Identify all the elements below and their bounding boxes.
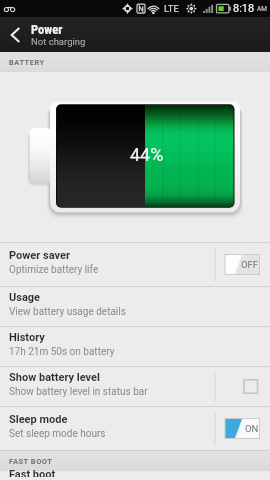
staticText: Power saver	[9, 249, 70, 262]
staticText: ON	[245, 423, 259, 434]
button[interactable]: Sleep mode on	[215, 407, 270, 450]
staticText: History	[9, 331, 45, 344]
button[interactable]: Fast boot	[0, 471, 270, 480]
staticText: 44%	[130, 144, 164, 165]
staticText: 17h 21m 50s on battery	[9, 346, 115, 358]
staticText: OFF	[241, 259, 259, 270]
staticText: Fast boot	[9, 468, 56, 477]
staticText: BATTERY	[9, 58, 45, 67]
staticText: Optimize battery life	[9, 264, 99, 276]
button[interactable]: Show battery level	[215, 367, 270, 406]
button[interactable]: Show battery level	[0, 367, 270, 406]
staticText: Show battery level in status bar	[9, 386, 148, 398]
button[interactable]: Back	[0, 17, 31, 52]
button[interactable]: Power saver off	[215, 243, 270, 286]
staticText: AM	[257, 5, 267, 13]
staticText: Not charging	[31, 36, 86, 47]
staticText: LTE	[164, 3, 179, 14]
staticText: Sleep mode	[9, 413, 68, 426]
button[interactable]: Sleep mode	[0, 407, 270, 450]
staticText: View battery usage details	[9, 306, 126, 318]
staticText: Set sleep mode hours	[9, 428, 106, 440]
staticText: FAST BOOT	[9, 457, 53, 466]
staticText: Show battery level	[9, 371, 100, 384]
button[interactable]: Power saver	[0, 243, 270, 286]
button[interactable]: Usage	[0, 287, 270, 326]
staticText: Power	[31, 22, 63, 37]
staticText: 8:18	[233, 2, 255, 15]
button[interactable]: History	[0, 327, 270, 366]
staticText: Usage	[9, 291, 41, 304]
